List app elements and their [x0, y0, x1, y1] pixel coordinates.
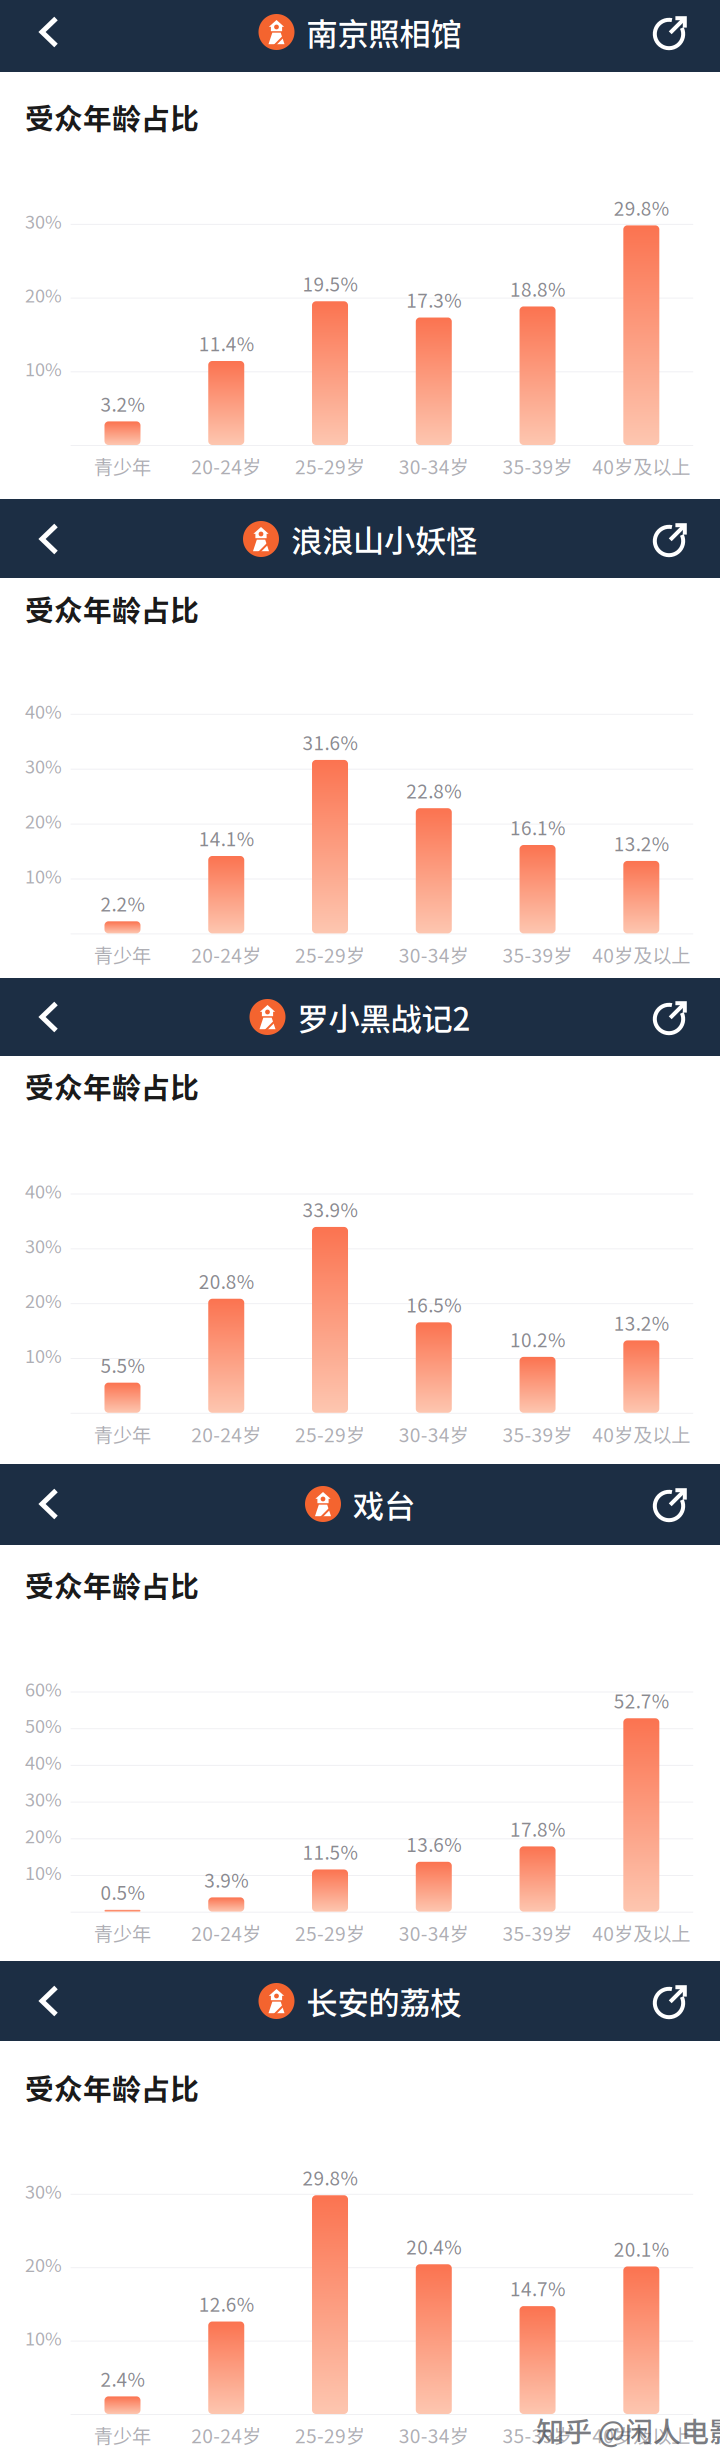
- staticText: 受众年龄占比: [25, 1564, 199, 1605]
- staticText: 35-39岁: [502, 452, 572, 480]
- staticText: 20%: [25, 807, 62, 834]
- button[interactable]: Share: [630, 0, 720, 72]
- staticText: 29.8%: [614, 194, 669, 221]
- staticText: 10%: [25, 355, 62, 381]
- button[interactable]: Back: [0, 499, 100, 578]
- staticText: 30-34岁: [399, 2421, 469, 2449]
- staticText: 35-39岁: [502, 1420, 572, 1448]
- staticText: 知乎 @闲人电影: [536, 2410, 720, 2450]
- staticText: 25-29岁: [295, 2421, 365, 2449]
- staticText: 40%: [25, 1749, 62, 1775]
- staticText: 22.8%: [406, 776, 461, 804]
- staticText: 52.7%: [614, 1687, 669, 1714]
- staticText: 30-34岁: [399, 1919, 469, 1947]
- button[interactable]: Share: [630, 499, 720, 578]
- staticText: 25-29岁: [295, 452, 365, 480]
- staticText: 10.2%: [510, 1325, 565, 1353]
- staticText: 31.6%: [302, 728, 357, 756]
- staticText: 20-24岁: [191, 1420, 261, 1448]
- staticText: 25-29岁: [295, 1420, 365, 1448]
- staticText: 17.8%: [510, 1815, 565, 1842]
- staticText: 受众年龄占比: [25, 1065, 199, 1106]
- staticText: 33.9%: [302, 1195, 357, 1223]
- staticText: 50%: [25, 1712, 62, 1738]
- staticText: 20-24岁: [191, 940, 261, 968]
- staticText: 罗小黑战记2: [297, 994, 470, 1040]
- staticText: 35-39岁: [502, 940, 572, 968]
- staticText: 20%: [25, 1822, 62, 1848]
- staticText: 浪浪山小妖怪: [291, 516, 477, 562]
- staticText: 12.6%: [199, 2290, 254, 2317]
- staticText: 20.4%: [406, 2233, 461, 2260]
- staticText: 29.8%: [302, 2164, 357, 2191]
- staticText: 40%: [25, 698, 62, 724]
- staticText: 40岁及以上: [592, 1919, 690, 1947]
- staticText: 35-39岁: [502, 2421, 572, 2449]
- staticText: 2.2%: [100, 890, 144, 917]
- button[interactable]: Back: [0, 1464, 100, 1545]
- staticText: 17.3%: [406, 286, 461, 313]
- staticText: 25-29岁: [295, 940, 365, 968]
- staticText: 长安的荔枝: [306, 1978, 461, 2024]
- button[interactable]: Back: [0, 0, 100, 72]
- staticText: 10%: [25, 1859, 62, 1885]
- button[interactable]: Share: [630, 1464, 720, 1545]
- staticText: 20%: [25, 2251, 62, 2277]
- staticText: 3.2%: [100, 390, 144, 417]
- staticText: 20-24岁: [191, 2421, 261, 2449]
- staticText: 30%: [25, 753, 62, 779]
- staticText: 20%: [25, 281, 62, 308]
- staticText: 南京照相馆: [306, 9, 461, 55]
- staticText: 30-34岁: [399, 1420, 469, 1448]
- staticText: 30-34岁: [399, 452, 469, 480]
- staticText: 14.7%: [510, 2274, 565, 2302]
- staticText: 青少年: [94, 1420, 151, 1448]
- staticText: 11.5%: [302, 1838, 357, 1865]
- staticText: 青少年: [94, 452, 151, 480]
- staticText: 0.5%: [100, 1878, 144, 1906]
- staticText: 40岁及以上: [592, 452, 690, 480]
- staticText: 11.4%: [199, 329, 254, 357]
- staticText: 30%: [25, 1785, 62, 1812]
- staticText: 20-24岁: [191, 1919, 261, 1947]
- staticText: 14.1%: [199, 824, 254, 852]
- staticText: 30%: [25, 2178, 62, 2204]
- staticText: 13.2%: [614, 1309, 669, 1336]
- staticText: 20%: [25, 1287, 62, 1313]
- staticText: 40岁及以上: [592, 1420, 690, 1448]
- staticText: 18.8%: [510, 275, 565, 302]
- staticText: 受众年龄占比: [25, 588, 199, 629]
- staticText: 35-39岁: [502, 1919, 572, 1947]
- button[interactable]: Back: [0, 978, 100, 1056]
- button[interactable]: Back: [0, 1961, 100, 2041]
- staticText: 受众年龄占比: [25, 96, 199, 137]
- staticText: 青少年: [94, 940, 151, 968]
- staticText: 16.1%: [510, 813, 565, 841]
- staticText: 30-34岁: [399, 940, 469, 968]
- staticText: 40岁及以上: [592, 940, 690, 968]
- staticText: 10%: [25, 2324, 62, 2351]
- staticText: 60%: [25, 1675, 62, 1702]
- staticText: 青少年: [94, 1919, 151, 1947]
- staticText: 10%: [25, 862, 62, 889]
- staticText: 25-29岁: [295, 1919, 365, 1947]
- staticText: 戏台: [353, 1481, 415, 1527]
- staticText: 20-24岁: [191, 452, 261, 480]
- staticText: 20.8%: [199, 1267, 254, 1294]
- button[interactable]: Share: [630, 1961, 720, 2041]
- staticText: 2.4%: [100, 2365, 144, 2392]
- staticText: 13.2%: [614, 829, 669, 857]
- staticText: 20.1%: [614, 2235, 669, 2262]
- button[interactable]: Share: [630, 978, 720, 1056]
- staticText: 10%: [25, 1342, 62, 1368]
- staticText: 青少年: [94, 2421, 151, 2449]
- staticText: 30%: [25, 208, 62, 234]
- staticText: 3.9%: [204, 1866, 248, 1893]
- staticText: 40岁及以上: [592, 2421, 690, 2449]
- staticText: 30%: [25, 1232, 62, 1258]
- staticText: 13.6%: [406, 1830, 461, 1857]
- staticText: 19.5%: [302, 270, 357, 297]
- staticText: 40%: [25, 1177, 62, 1204]
- staticText: 受众年龄占比: [25, 2067, 199, 2108]
- staticText: 16.5%: [406, 1291, 461, 1318]
